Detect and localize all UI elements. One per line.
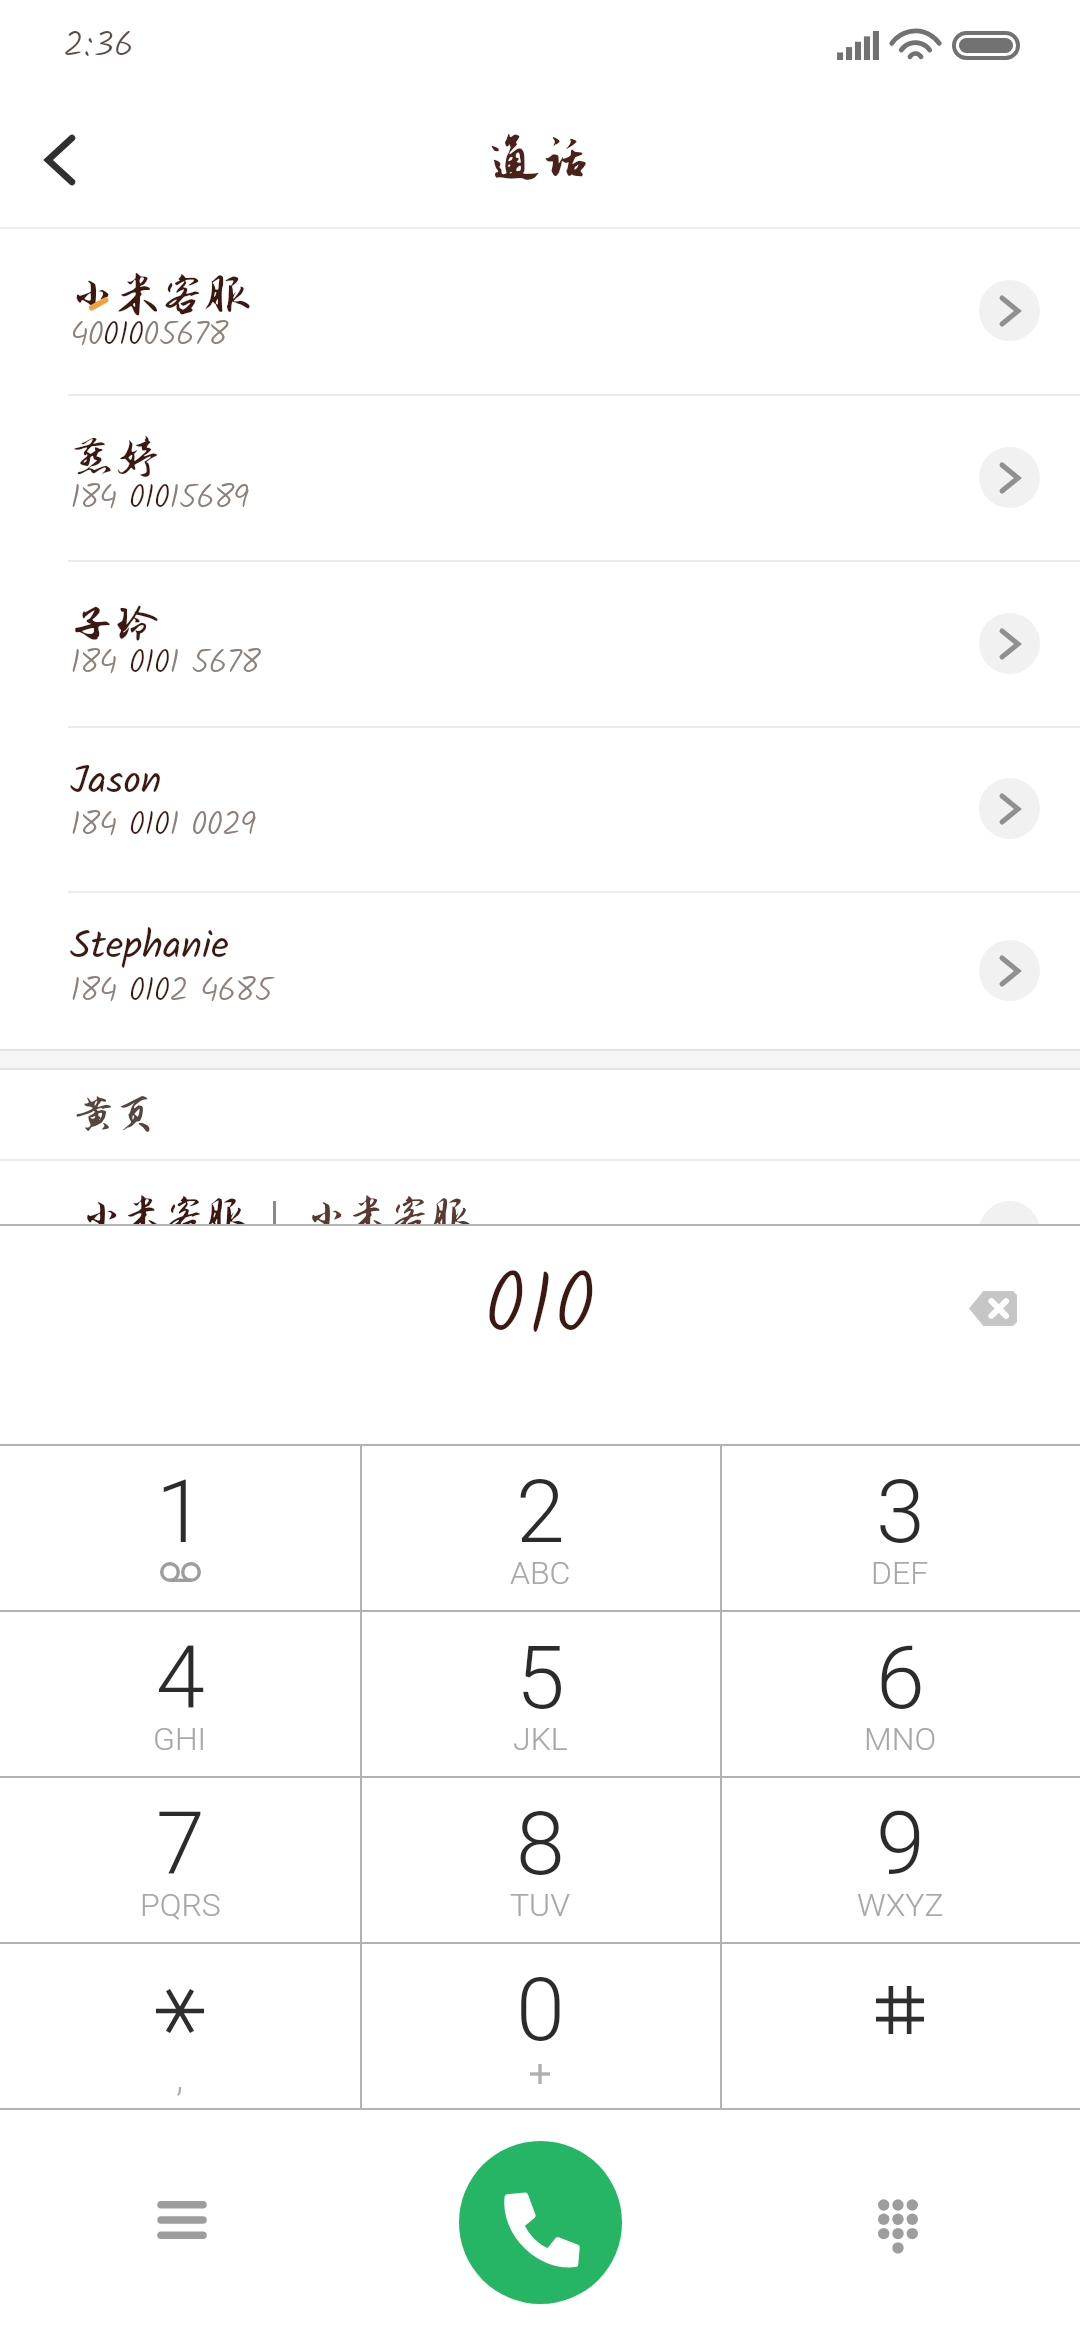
staticText: 通话 xyxy=(490,130,591,186)
staticText: TUV xyxy=(510,1886,570,1924)
button[interactable]: Open contact xyxy=(979,778,1040,839)
button[interactable]: 小米客服 xyxy=(0,229,1080,394)
staticText: 9 xyxy=(876,1792,925,1895)
staticText: 4001005678 xyxy=(70,309,227,363)
button[interactable]: 8 xyxy=(360,1776,720,1942)
staticText: 0 xyxy=(516,1958,565,2061)
staticText: WXYZ xyxy=(857,1886,944,1924)
staticText: 8 xyxy=(516,1792,565,1895)
button[interactable]: Open contact xyxy=(979,447,1040,508)
staticText: 3 xyxy=(876,1460,925,1563)
staticText: 010 xyxy=(484,1241,597,1378)
staticText: 184 01015689 xyxy=(70,472,248,526)
staticText: , xyxy=(176,2056,184,2101)
staticText: ABC xyxy=(510,1554,571,1592)
button[interactable]: Jason xyxy=(0,728,1080,891)
staticText: 184 0101 5678 xyxy=(70,637,260,691)
staticText: MNO xyxy=(864,1720,937,1758)
button[interactable]: Open contact xyxy=(979,940,1040,1001)
staticText: Jason xyxy=(70,752,162,814)
button[interactable]: Open contact xyxy=(979,613,1040,674)
staticText: 1 xyxy=(156,1460,205,1563)
staticText: 子玲 xyxy=(70,599,160,649)
staticText: 7 xyxy=(156,1792,205,1895)
staticText: 6 xyxy=(876,1626,925,1729)
staticText: DEF xyxy=(871,1554,929,1592)
button[interactable]: 3 xyxy=(720,1444,1080,1610)
staticText: 小米客服 xyxy=(70,270,250,320)
staticText: JKL xyxy=(513,1720,568,1758)
button[interactable]: Backspace xyxy=(948,1263,1038,1353)
button[interactable] xyxy=(720,1942,1080,2108)
button[interactable]: Call xyxy=(459,2141,622,2304)
staticText: 小米客服 xyxy=(306,1193,472,1224)
staticText: Stephanie xyxy=(70,917,229,979)
staticText: GHI xyxy=(153,1720,207,1758)
button[interactable]: 4 xyxy=(0,1610,360,1776)
staticText: PQRS xyxy=(140,1886,221,1924)
button[interactable]: 子玲 xyxy=(0,562,1080,726)
button[interactable]: Dialpad xyxy=(838,2164,958,2284)
staticText: 5 xyxy=(516,1626,565,1729)
button[interactable]: 燕婷 xyxy=(0,396,1080,560)
button[interactable]: Back xyxy=(0,92,120,228)
button[interactable]: 1 xyxy=(0,1444,360,1610)
staticText: 燕婷 xyxy=(70,432,160,482)
button[interactable]: , xyxy=(0,1942,360,2108)
button[interactable]: Stephanie xyxy=(0,893,1080,1049)
button[interactable]: 2 xyxy=(360,1444,720,1610)
staticText: 小米客服 xyxy=(81,1193,247,1224)
staticText: 2 xyxy=(516,1460,565,1563)
staticText: 4 xyxy=(156,1626,205,1729)
button[interactable]: 5 xyxy=(360,1610,720,1776)
staticText: 2:36 xyxy=(63,18,135,75)
button[interactable]: 黄页 xyxy=(0,1070,1080,1159)
button[interactable]: 7 xyxy=(0,1776,360,1942)
staticText: 黄页 xyxy=(73,1092,156,1138)
button[interactable]: 0 xyxy=(360,1942,720,2108)
staticText: 184 0102 4685 xyxy=(70,965,272,1019)
staticText: 184 0101 0029 xyxy=(70,799,255,853)
button[interactable]: 6 xyxy=(720,1610,1080,1776)
button[interactable]: Open contact xyxy=(979,280,1040,341)
button[interactable]: 9 xyxy=(720,1776,1080,1942)
button[interactable]: Call log xyxy=(122,2164,242,2284)
